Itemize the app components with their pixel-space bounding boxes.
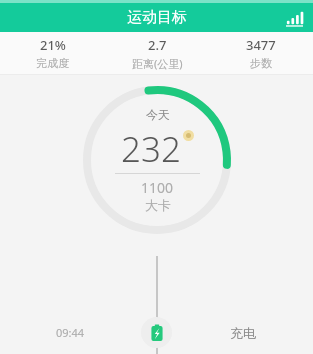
- button[interactable]: 2.7: [105, 36, 209, 71]
- button[interactable]: Charging: [141, 317, 172, 348]
- staticText: 距离(公里): [132, 56, 183, 71]
- staticText: 运动目标: [127, 8, 187, 27]
- staticText: 09:44: [56, 325, 85, 340]
- staticText: 2.7: [148, 36, 167, 54]
- staticText: 232: [121, 125, 181, 173]
- staticText: 充电: [230, 325, 256, 341]
- staticText: 完成度: [36, 56, 69, 70]
- button[interactable]: Statistics: [282, 6, 306, 30]
- staticText: 21%: [40, 36, 66, 54]
- button[interactable]: 3477: [209, 36, 313, 70]
- staticText: 步数: [250, 56, 272, 70]
- button[interactable]: 21%: [0, 36, 105, 70]
- staticText: 今天: [146, 107, 170, 122]
- staticText: 3477: [246, 36, 276, 54]
- staticText: 大卡: [145, 197, 171, 213]
- staticText: 1100: [141, 178, 174, 197]
